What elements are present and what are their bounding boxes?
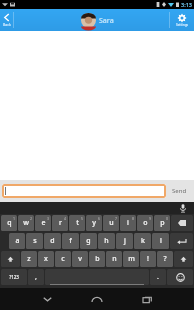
button[interactable]: Voice input xyxy=(178,203,188,213)
staticText: e xyxy=(41,218,46,228)
staticText: t xyxy=(76,218,79,228)
staticText: Sara xyxy=(99,16,114,26)
button[interactable]: v xyxy=(72,251,88,267)
staticText: 8 xyxy=(132,216,135,221)
staticText: ? xyxy=(163,254,167,264)
staticText: 1 xyxy=(13,216,16,221)
button[interactable]: enter xyxy=(170,233,193,249)
button[interactable]: r xyxy=(52,215,68,231)
button[interactable]: ! xyxy=(140,251,156,267)
staticText: y xyxy=(92,218,96,228)
staticText: 9 xyxy=(149,216,152,221)
staticText: o xyxy=(143,218,148,228)
button[interactable]: j xyxy=(116,233,133,249)
button[interactable]: d xyxy=(44,233,61,249)
staticText: Send xyxy=(172,187,187,195)
button[interactable] xyxy=(2,184,166,198)
button[interactable]: Send xyxy=(166,180,192,202)
staticText: c xyxy=(61,254,65,264)
staticText: 0 xyxy=(166,216,169,221)
staticText: 4 xyxy=(64,216,67,221)
staticText: u xyxy=(109,218,114,228)
button[interactable]: shift xyxy=(1,251,20,267)
button[interactable]: n xyxy=(106,251,122,267)
button[interactable]: m xyxy=(123,251,139,267)
button[interactable]: Settings xyxy=(170,9,194,31)
staticText: m xyxy=(128,254,135,264)
button[interactable]: o xyxy=(137,215,153,231)
staticText: w xyxy=(23,218,29,228)
staticText: ! xyxy=(147,254,149,264)
staticText: 3:13 xyxy=(181,1,192,8)
button[interactable]: Recent apps xyxy=(130,289,164,309)
staticText: n xyxy=(112,254,117,264)
button[interactable]: b xyxy=(89,251,105,267)
button[interactable]: bksp xyxy=(171,215,193,231)
staticText: Settings xyxy=(176,23,189,27)
button[interactable]: t xyxy=(69,215,85,231)
button[interactable]: . xyxy=(150,269,166,285)
staticText: z xyxy=(27,254,31,264)
button[interactable]: shift xyxy=(174,251,193,267)
button[interactable]: g xyxy=(80,233,97,249)
staticText: 3 xyxy=(47,216,50,221)
button[interactable]: q xyxy=(1,215,17,231)
staticText: l xyxy=(160,236,162,246)
button[interactable]: space xyxy=(45,269,149,285)
button[interactable]: Home xyxy=(80,289,114,309)
staticText: Back xyxy=(3,22,11,27)
staticText: 5 xyxy=(81,216,84,221)
button[interactable]: Sara xyxy=(81,13,114,28)
staticText: 6 xyxy=(98,216,101,221)
button[interactable]: p xyxy=(154,215,170,231)
button[interactable]: , xyxy=(28,269,44,285)
staticText: h xyxy=(104,236,109,246)
button[interactable]: Back xyxy=(0,9,26,31)
button[interactable]: z xyxy=(21,251,37,267)
button[interactable]: i xyxy=(120,215,136,231)
staticText: , xyxy=(35,272,37,282)
staticText: a xyxy=(15,236,20,246)
button[interactable]: h xyxy=(98,233,115,249)
staticText: 2 xyxy=(30,216,33,221)
staticText: k xyxy=(141,236,145,246)
staticText: ?123 xyxy=(9,274,19,280)
staticText: 7 xyxy=(115,216,118,221)
button[interactable]: ?123 xyxy=(1,269,27,285)
staticText: b xyxy=(95,254,100,264)
staticText: q xyxy=(7,218,12,228)
button[interactable]: Back xyxy=(30,289,64,309)
button[interactable]: u xyxy=(103,215,119,231)
button[interactable]: f xyxy=(62,233,79,249)
staticText: f xyxy=(69,236,72,246)
button[interactable]: y xyxy=(86,215,102,231)
staticText: r xyxy=(59,218,62,228)
button[interactable]: x xyxy=(38,251,54,267)
staticText: j xyxy=(124,236,126,246)
staticText: s xyxy=(33,236,37,246)
button[interactable]: a xyxy=(9,233,25,249)
staticText: i xyxy=(127,218,129,228)
button[interactable]: s xyxy=(26,233,43,249)
button[interactable]: ? xyxy=(157,251,173,267)
staticText: g xyxy=(86,236,91,246)
button[interactable]: k xyxy=(134,233,151,249)
staticText: p xyxy=(160,218,165,228)
staticText: x xyxy=(44,254,48,264)
staticText: d xyxy=(50,236,55,246)
button[interactable]: w xyxy=(18,215,34,231)
button[interactable]: l xyxy=(152,233,169,249)
staticText: . xyxy=(157,272,159,282)
button[interactable]: e xyxy=(35,215,51,231)
staticText: v xyxy=(78,254,82,264)
button[interactable]: emoji xyxy=(167,269,193,285)
button[interactable]: c xyxy=(55,251,71,267)
